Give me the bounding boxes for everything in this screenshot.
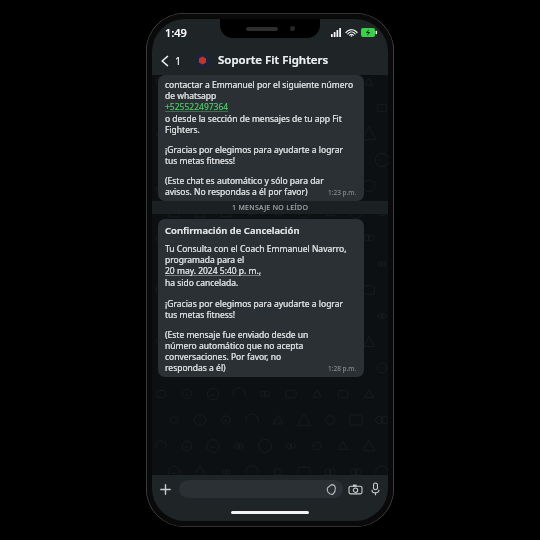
button[interactable]: Voice message bbox=[368, 479, 388, 500]
staticText: 1:49 bbox=[165, 25, 187, 40]
staticText: ¡Gracias por elegimos para ayudarte a lo… bbox=[165, 298, 357, 320]
button[interactable]: Soporte Fit Fighters bbox=[218, 52, 329, 68]
staticText: (Este chat es automático y sólo para dar… bbox=[165, 175, 324, 197]
button[interactable]: Confirmación de Cancelación bbox=[158, 219, 364, 377]
button[interactable]: Stickers bbox=[179, 480, 343, 498]
button[interactable]: Attach bbox=[152, 479, 179, 500]
staticText: (Este mensaje fue enviado desde un númer… bbox=[165, 329, 325, 373]
staticText: Confirmación de Cancelación bbox=[165, 224, 300, 237]
staticText: 1:23 p.m. bbox=[328, 188, 357, 197]
other: Stickers bbox=[326, 484, 337, 495]
staticText: contactar a Emmanuel por el siguiente nú… bbox=[165, 79, 357, 101]
button[interactable]: Back bbox=[152, 49, 186, 72]
staticText: 1 bbox=[175, 53, 182, 68]
staticText: 1 MENSAJE NO LEÍDO bbox=[232, 203, 309, 213]
staticText: ha sido cancelada. bbox=[165, 277, 239, 289]
staticText: o desde la sección de mensajes de tu app… bbox=[165, 113, 357, 135]
staticText: 20 may. 2024 5:40 p. m., bbox=[165, 265, 262, 277]
staticText: Tu Consulta con el Coach Emmanuel Navarr… bbox=[165, 243, 357, 265]
staticText: ¡Gracias por elegimos para ayudarte a lo… bbox=[165, 144, 357, 166]
button[interactable]: Camera bbox=[343, 480, 368, 499]
button[interactable]: +525522497364 bbox=[165, 101, 229, 113]
button[interactable]: contactar a Emmanuel por el siguiente nú… bbox=[158, 75, 364, 201]
staticText: 1:28 p.m. bbox=[328, 364, 357, 373]
